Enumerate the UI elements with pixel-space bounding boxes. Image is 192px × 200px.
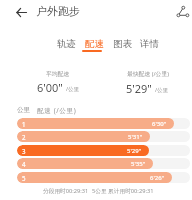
staticText: 5'31" [128,133,143,141]
button[interactable]: 轨迹 [56,38,76,54]
staticText: 分段用时00:29:31 [43,187,89,195]
button[interactable]: 5 [17,172,190,183]
staticText: 图表 [113,38,132,50]
staticText: 平均配速 [46,70,70,77]
staticText: 户外跑步 [36,4,80,18]
staticText: 5公里 累计用时00:29:31 [92,187,154,195]
button[interactable]: Share [174,3,191,20]
button[interactable]: 1 [17,118,190,129]
staticText: 2 [22,133,26,141]
staticText: 1 [22,120,26,128]
staticText: 3 [22,147,26,155]
button[interactable]: Back [12,3,30,21]
staticText: 6'26" [150,174,165,182]
staticText: 5 [22,174,26,182]
button[interactable]: 图表 [112,38,132,54]
button[interactable]: 2 [17,131,190,142]
staticText: 4 [22,160,26,168]
staticText: 5'35" [131,160,146,168]
staticText: 公里 [17,106,31,114]
button[interactable]: 配速 [84,38,104,54]
button[interactable]: 3 [17,145,190,156]
staticText: 配速 (/公里) [37,106,77,115]
staticText: /公里 [155,86,169,94]
staticText: 5'29" [127,147,142,155]
staticText: 6'00" [37,80,63,95]
staticText: 最快配速 (/公里) [127,70,169,78]
staticText: 详情 [140,38,159,50]
staticText: 5'29" [126,81,152,96]
staticText: 配速 [85,38,104,50]
staticText: 轨迹 [57,38,76,50]
staticText: 6'30" [152,120,167,128]
staticText: /公里 [66,85,80,93]
button[interactable]: 详情 [139,38,159,54]
button[interactable]: 4 [17,158,190,169]
